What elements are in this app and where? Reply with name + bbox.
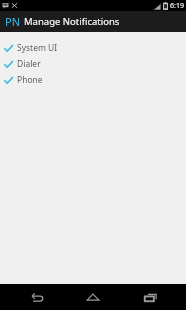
staticText: 6:19 (170, 1, 184, 11)
staticText: System UI (17, 42, 58, 54)
button[interactable]: Dialer (0, 56, 186, 72)
staticText: Phone (17, 74, 43, 86)
button[interactable]: System UI (0, 40, 186, 56)
staticText: PN (5, 14, 21, 29)
staticText: Manage Notifications (24, 15, 120, 28)
button[interactable]: Phone (0, 72, 186, 88)
staticText: Dialer (17, 58, 41, 70)
button[interactable]: Back (17, 284, 57, 310)
button[interactable]: Recent apps (130, 284, 170, 310)
button[interactable]: Home (73, 284, 113, 310)
